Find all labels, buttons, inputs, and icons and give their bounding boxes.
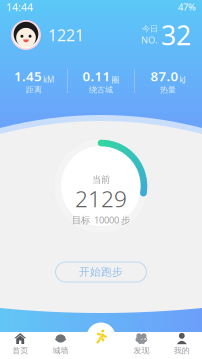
button[interactable]: 首页: [0, 332, 40, 359]
button[interactable]: 发现: [121, 332, 162, 359]
staticText: 1.45: [14, 67, 42, 85]
staticText: 城墙: [53, 346, 69, 355]
staticText: 2129: [75, 183, 127, 214]
button[interactable]: 开始跑步: [55, 262, 146, 282]
staticText: 47%: [178, 1, 196, 13]
staticText: 当前: [92, 174, 110, 185]
staticText: 开始跑步: [79, 265, 123, 278]
staticText: 14:44: [6, 0, 33, 14]
staticText: 目标 10000 步: [72, 214, 130, 226]
staticText: 距离: [26, 85, 42, 95]
staticText: NO.: [141, 34, 158, 46]
button[interactable]: 城墙: [40, 332, 81, 359]
staticText: kJ: [179, 74, 185, 85]
staticText: kM: [43, 74, 54, 85]
staticText: 首页: [12, 346, 28, 355]
staticText: 圈: [111, 75, 119, 85]
staticText: 0.11: [82, 67, 110, 85]
staticText: 今日: [142, 24, 158, 34]
button[interactable]: 我的: [162, 332, 202, 359]
staticText: 我的: [174, 346, 190, 355]
staticText: 87.0: [150, 67, 178, 85]
staticText: 32: [161, 17, 191, 53]
button[interactable]: 开始跑步: [86, 322, 115, 351]
staticText: 1221: [48, 24, 84, 46]
staticText: 热量: [160, 85, 176, 95]
staticText: 绕古城: [89, 85, 113, 95]
staticText: 发现: [133, 346, 149, 355]
